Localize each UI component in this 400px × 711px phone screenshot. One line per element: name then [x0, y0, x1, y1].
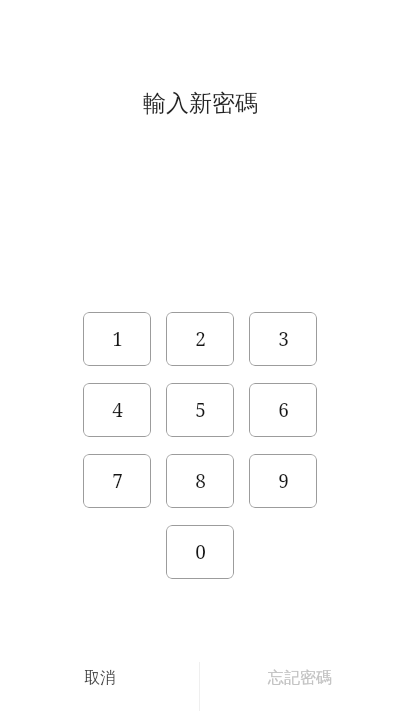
button[interactable]: 0 [166, 525, 234, 579]
button[interactable]: 9 [249, 454, 317, 508]
button[interactable]: 7 [83, 454, 151, 508]
staticText: 2 [195, 326, 206, 352]
button[interactable]: 8 [166, 454, 234, 508]
button[interactable]: 1 [83, 312, 151, 366]
staticText: 4 [112, 397, 123, 423]
staticText: 5 [195, 397, 206, 423]
button[interactable]: 5 [166, 383, 234, 437]
button[interactable]: 忘記密碼 [199, 645, 400, 711]
button[interactable]: 6 [249, 383, 317, 437]
staticText: 9 [278, 468, 289, 494]
button[interactable]: 2 [166, 312, 234, 366]
staticText: 7 [112, 468, 123, 494]
button[interactable]: 3 [249, 312, 317, 366]
staticText: 6 [278, 397, 289, 423]
button[interactable]: 4 [83, 383, 151, 437]
staticText: 8 [195, 468, 206, 494]
button[interactable]: 取消 [0, 645, 199, 711]
staticText: 1 [112, 326, 123, 352]
staticText: 輸入新密碼 [143, 89, 258, 118]
staticText: 0 [195, 539, 206, 565]
staticText: 忘記密碼 [268, 668, 332, 688]
staticText: 3 [278, 326, 289, 352]
staticText: 取消 [84, 668, 116, 688]
